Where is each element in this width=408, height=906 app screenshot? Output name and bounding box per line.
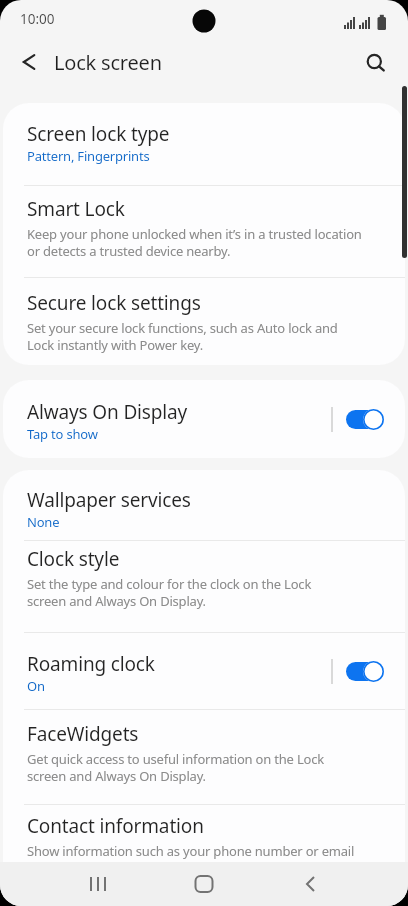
staticText: Smart Lock (27, 196, 125, 222)
button[interactable]: FaceWidgets (3, 710, 405, 804)
staticText: 10:00 (20, 10, 55, 28)
staticText: Get quick access to useful information o… (27, 750, 324, 785)
staticText: Tap to show (27, 425, 98, 443)
button[interactable]: Always On Display (3, 380, 405, 458)
button[interactable] (346, 661, 384, 682)
button[interactable] (182, 862, 226, 906)
button[interactable]: Wallpaper services (3, 470, 405, 540)
staticText: FaceWidgets (27, 721, 139, 747)
staticText: Pattern, Fingerprints (27, 147, 150, 165)
button[interactable] (366, 47, 396, 77)
staticText: None (27, 513, 60, 531)
staticText: Roaming clock (27, 651, 155, 677)
staticText: Screen lock type (27, 121, 170, 147)
button[interactable]: Clock style (3, 541, 405, 632)
staticText: Lock screen (54, 49, 162, 76)
staticText: Keep your phone unlocked when it’s in a … (27, 225, 362, 260)
button[interactable] (76, 862, 120, 906)
button[interactable] (288, 862, 332, 906)
button[interactable]: Screen lock type (3, 103, 405, 185)
staticText: Always On Display (27, 399, 188, 425)
staticText: Set your secure lock functions, such as … (27, 319, 338, 354)
staticText: On (27, 677, 45, 695)
button[interactable]: Smart Lock (3, 186, 405, 277)
button[interactable]: Roaming clock (3, 633, 405, 709)
button[interactable] (346, 409, 384, 430)
staticText: Clock style (27, 546, 120, 572)
button[interactable]: Secure lock settings (3, 278, 405, 365)
button[interactable]: Contact information (3, 805, 405, 862)
staticText: Contact information (27, 813, 204, 839)
staticText: Show information such as your phone numb… (27, 842, 355, 860)
staticText: Set the type and colour for the clock on… (27, 575, 312, 610)
staticText: Wallpaper services (27, 487, 191, 513)
button[interactable] (12, 44, 48, 80)
staticText: Secure lock settings (27, 290, 201, 316)
